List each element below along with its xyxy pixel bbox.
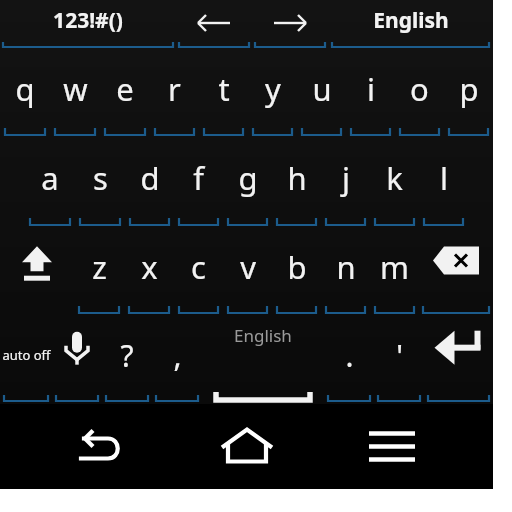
button[interactable]: s: [75, 138, 125, 228]
button[interactable]: Backspace: [419, 228, 493, 316]
button[interactable]: z: [74, 228, 124, 316]
button[interactable]: g: [223, 138, 272, 228]
staticText: k: [386, 157, 403, 199]
button[interactable]: e: [100, 50, 150, 138]
staticText: e: [116, 68, 134, 110]
button[interactable]: v: [223, 228, 272, 316]
button[interactable]: l: [419, 138, 468, 228]
staticText: .: [345, 335, 354, 376]
staticText: o: [410, 68, 429, 110]
button[interactable]: t: [199, 50, 248, 138]
button[interactable]: i: [346, 50, 395, 138]
button[interactable]: d: [125, 138, 174, 228]
button[interactable]: Shift: [0, 228, 74, 316]
staticText: ?: [120, 335, 134, 376]
staticText: auto off: [2, 346, 51, 364]
button[interactable]: a: [25, 138, 75, 228]
staticText: t: [218, 68, 230, 110]
staticText: z: [92, 246, 107, 288]
staticText: m: [380, 246, 409, 288]
button[interactable]: o: [395, 50, 444, 138]
button[interactable]: p: [444, 50, 493, 138]
button[interactable]: Move cursor right: [252, 0, 328, 50]
staticText: u: [312, 68, 332, 110]
button[interactable]: Menu: [348, 404, 436, 489]
staticText: English: [234, 324, 292, 347]
staticText: n: [336, 246, 356, 288]
button[interactable]: English: [202, 316, 324, 404]
staticText: j: [342, 157, 350, 199]
staticText: d: [140, 157, 160, 199]
button[interactable]: w: [50, 50, 100, 138]
staticText: y: [265, 68, 281, 110]
button[interactable]: 123!#(): [0, 0, 176, 50]
button[interactable]: Back: [57, 404, 145, 489]
button[interactable]: .: [324, 316, 374, 404]
staticText: v: [240, 246, 256, 288]
button[interactable]: Home: [203, 404, 291, 489]
button[interactable]: r: [150, 50, 199, 138]
button[interactable]: English: [328, 0, 493, 50]
staticText: i: [367, 68, 375, 110]
button[interactable]: Move cursor left: [176, 0, 252, 50]
button[interactable]: m: [370, 228, 419, 316]
staticText: r: [168, 68, 181, 110]
button[interactable]: auto off: [0, 316, 52, 404]
staticText: ': [396, 335, 403, 376]
staticText: p: [459, 68, 479, 110]
button[interactable]: Enter: [424, 316, 493, 404]
staticText: h: [287, 157, 307, 199]
button[interactable]: q: [0, 50, 50, 138]
staticText: English: [373, 6, 449, 35]
button[interactable]: c: [174, 228, 223, 316]
staticText: l: [440, 157, 448, 199]
button[interactable]: ?: [102, 316, 152, 404]
button[interactable]: Voice input: [52, 316, 102, 404]
button[interactable]: x: [124, 228, 174, 316]
button[interactable]: b: [272, 228, 321, 316]
staticText: 123!#(): [53, 6, 123, 35]
staticText: c: [191, 246, 206, 288]
staticText: w: [63, 68, 88, 110]
button[interactable]: u: [297, 50, 346, 138]
staticText: ,: [173, 335, 182, 376]
button[interactable]: k: [370, 138, 419, 228]
staticText: b: [287, 246, 307, 288]
staticText: g: [238, 157, 258, 199]
button[interactable]: h: [272, 138, 321, 228]
staticText: a: [41, 157, 59, 199]
button[interactable]: y: [248, 50, 297, 138]
button[interactable]: f: [174, 138, 223, 228]
button[interactable]: n: [321, 228, 370, 316]
staticText: x: [141, 246, 158, 288]
staticText: q: [15, 68, 35, 110]
button[interactable]: ,: [152, 316, 202, 404]
staticText: s: [93, 157, 108, 199]
button[interactable]: ': [374, 316, 424, 404]
button[interactable]: j: [321, 138, 370, 228]
staticText: f: [193, 157, 204, 199]
